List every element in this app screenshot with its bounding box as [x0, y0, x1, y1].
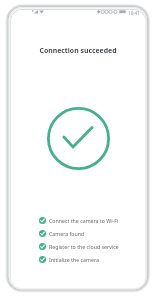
staticText: 10:41 [128, 10, 140, 16]
other: Connection succeeded [11, 107, 145, 170]
staticText: Camera found [49, 230, 85, 237]
button[interactable]: Register to the cloud service [39, 240, 139, 253]
button[interactable]: Camera found [39, 227, 139, 240]
button[interactable]: Initialize the camera [39, 253, 139, 266]
staticText: Initialize the camera [49, 256, 99, 263]
button[interactable]: Connect the camera to Wi-Fi [39, 214, 139, 227]
staticText: Register to the cloud service [49, 243, 119, 250]
staticText: Connection succeeded [11, 46, 145, 55]
staticText: Connect the camera to Wi-Fi [49, 217, 119, 224]
